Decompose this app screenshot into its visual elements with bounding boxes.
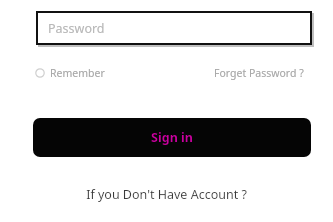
button[interactable]: If you Don't Have Account ? xyxy=(86,186,247,203)
button[interactable]: Password xyxy=(36,11,312,45)
button[interactable]: Remember xyxy=(34,64,105,82)
staticText: Sign in xyxy=(151,129,193,146)
staticText: Remember xyxy=(50,66,105,80)
staticText: Password xyxy=(48,20,105,37)
button[interactable]: Sign in xyxy=(33,118,311,157)
staticText: If you Don't Have Account ? xyxy=(86,186,247,203)
button[interactable]: Forget Password ? xyxy=(214,66,304,80)
staticText: Forget Password ? xyxy=(214,66,304,80)
